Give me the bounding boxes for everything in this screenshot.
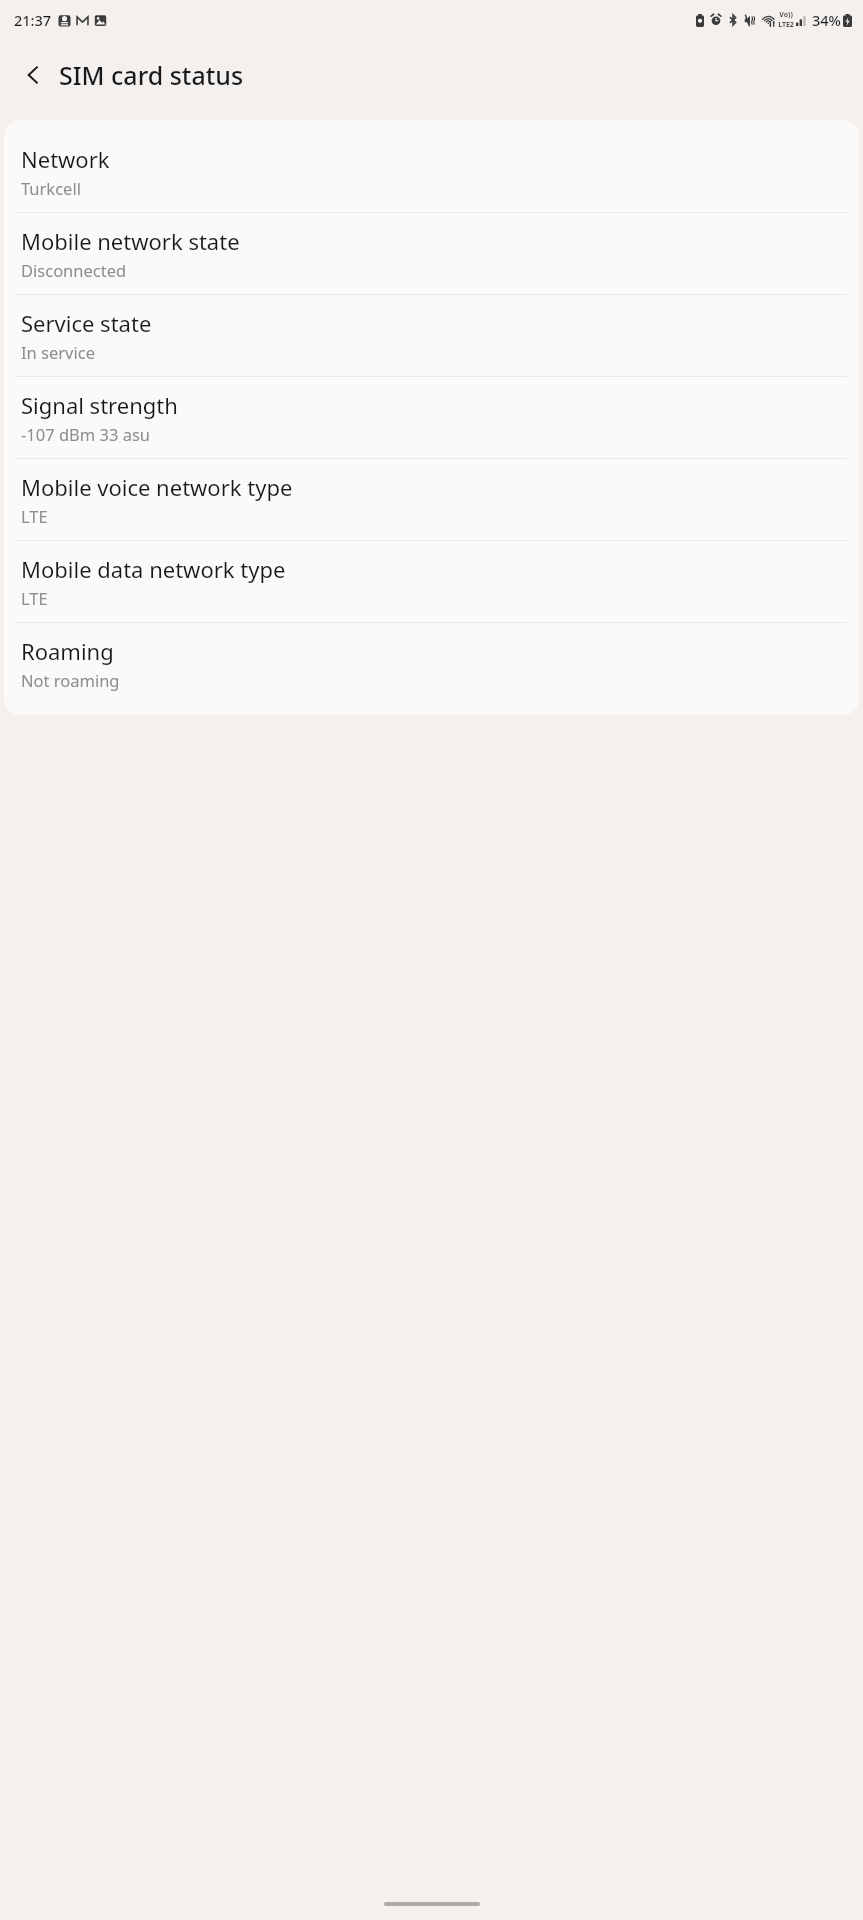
- button[interactable]: Network: [4, 131, 859, 212]
- button[interactable]: Mobile voice network type: [4, 459, 859, 540]
- staticText: 34%: [812, 10, 841, 30]
- staticText: In service: [21, 341, 95, 363]
- button[interactable]: Service state: [4, 295, 859, 376]
- staticText: Mobile data network type: [21, 554, 286, 584]
- staticText: Mobile network state: [21, 226, 240, 256]
- button[interactable]: Signal strength: [4, 377, 859, 458]
- staticText: Disconnected: [21, 259, 127, 281]
- staticText: 21:37: [14, 10, 52, 30]
- staticText: SIM card status: [59, 58, 244, 92]
- button[interactable]: Roaming: [4, 623, 859, 704]
- staticText: -107 dBm 33 asu: [21, 423, 151, 445]
- staticText: LTE2: [778, 20, 794, 30]
- staticText: Signal strength: [21, 390, 178, 420]
- staticText: Not roaming: [21, 669, 120, 691]
- button[interactable]: Mobile network state: [4, 213, 859, 294]
- staticText: Network: [21, 144, 110, 174]
- staticText: Vo)): [779, 10, 793, 20]
- staticText: LTE: [21, 587, 48, 609]
- staticText: LTE: [21, 505, 48, 527]
- button[interactable]: Mobile data network type: [4, 541, 859, 622]
- staticText: Turkcell: [21, 177, 81, 199]
- button[interactable]: Back: [11, 53, 55, 97]
- staticText: Service state: [21, 308, 152, 338]
- staticText: Roaming: [21, 636, 114, 666]
- staticText: Mobile voice network type: [21, 472, 293, 502]
